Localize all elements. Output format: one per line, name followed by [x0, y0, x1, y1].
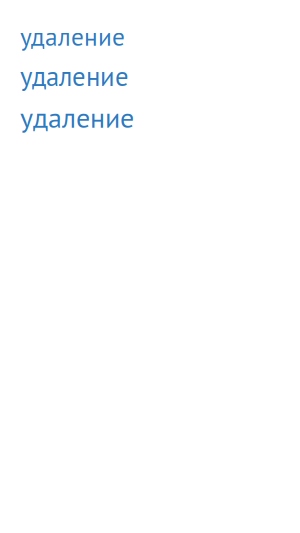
staticText: удаление	[20, 59, 129, 93]
staticText: удаление	[20, 20, 125, 53]
staticText: удаление	[20, 99, 134, 135]
